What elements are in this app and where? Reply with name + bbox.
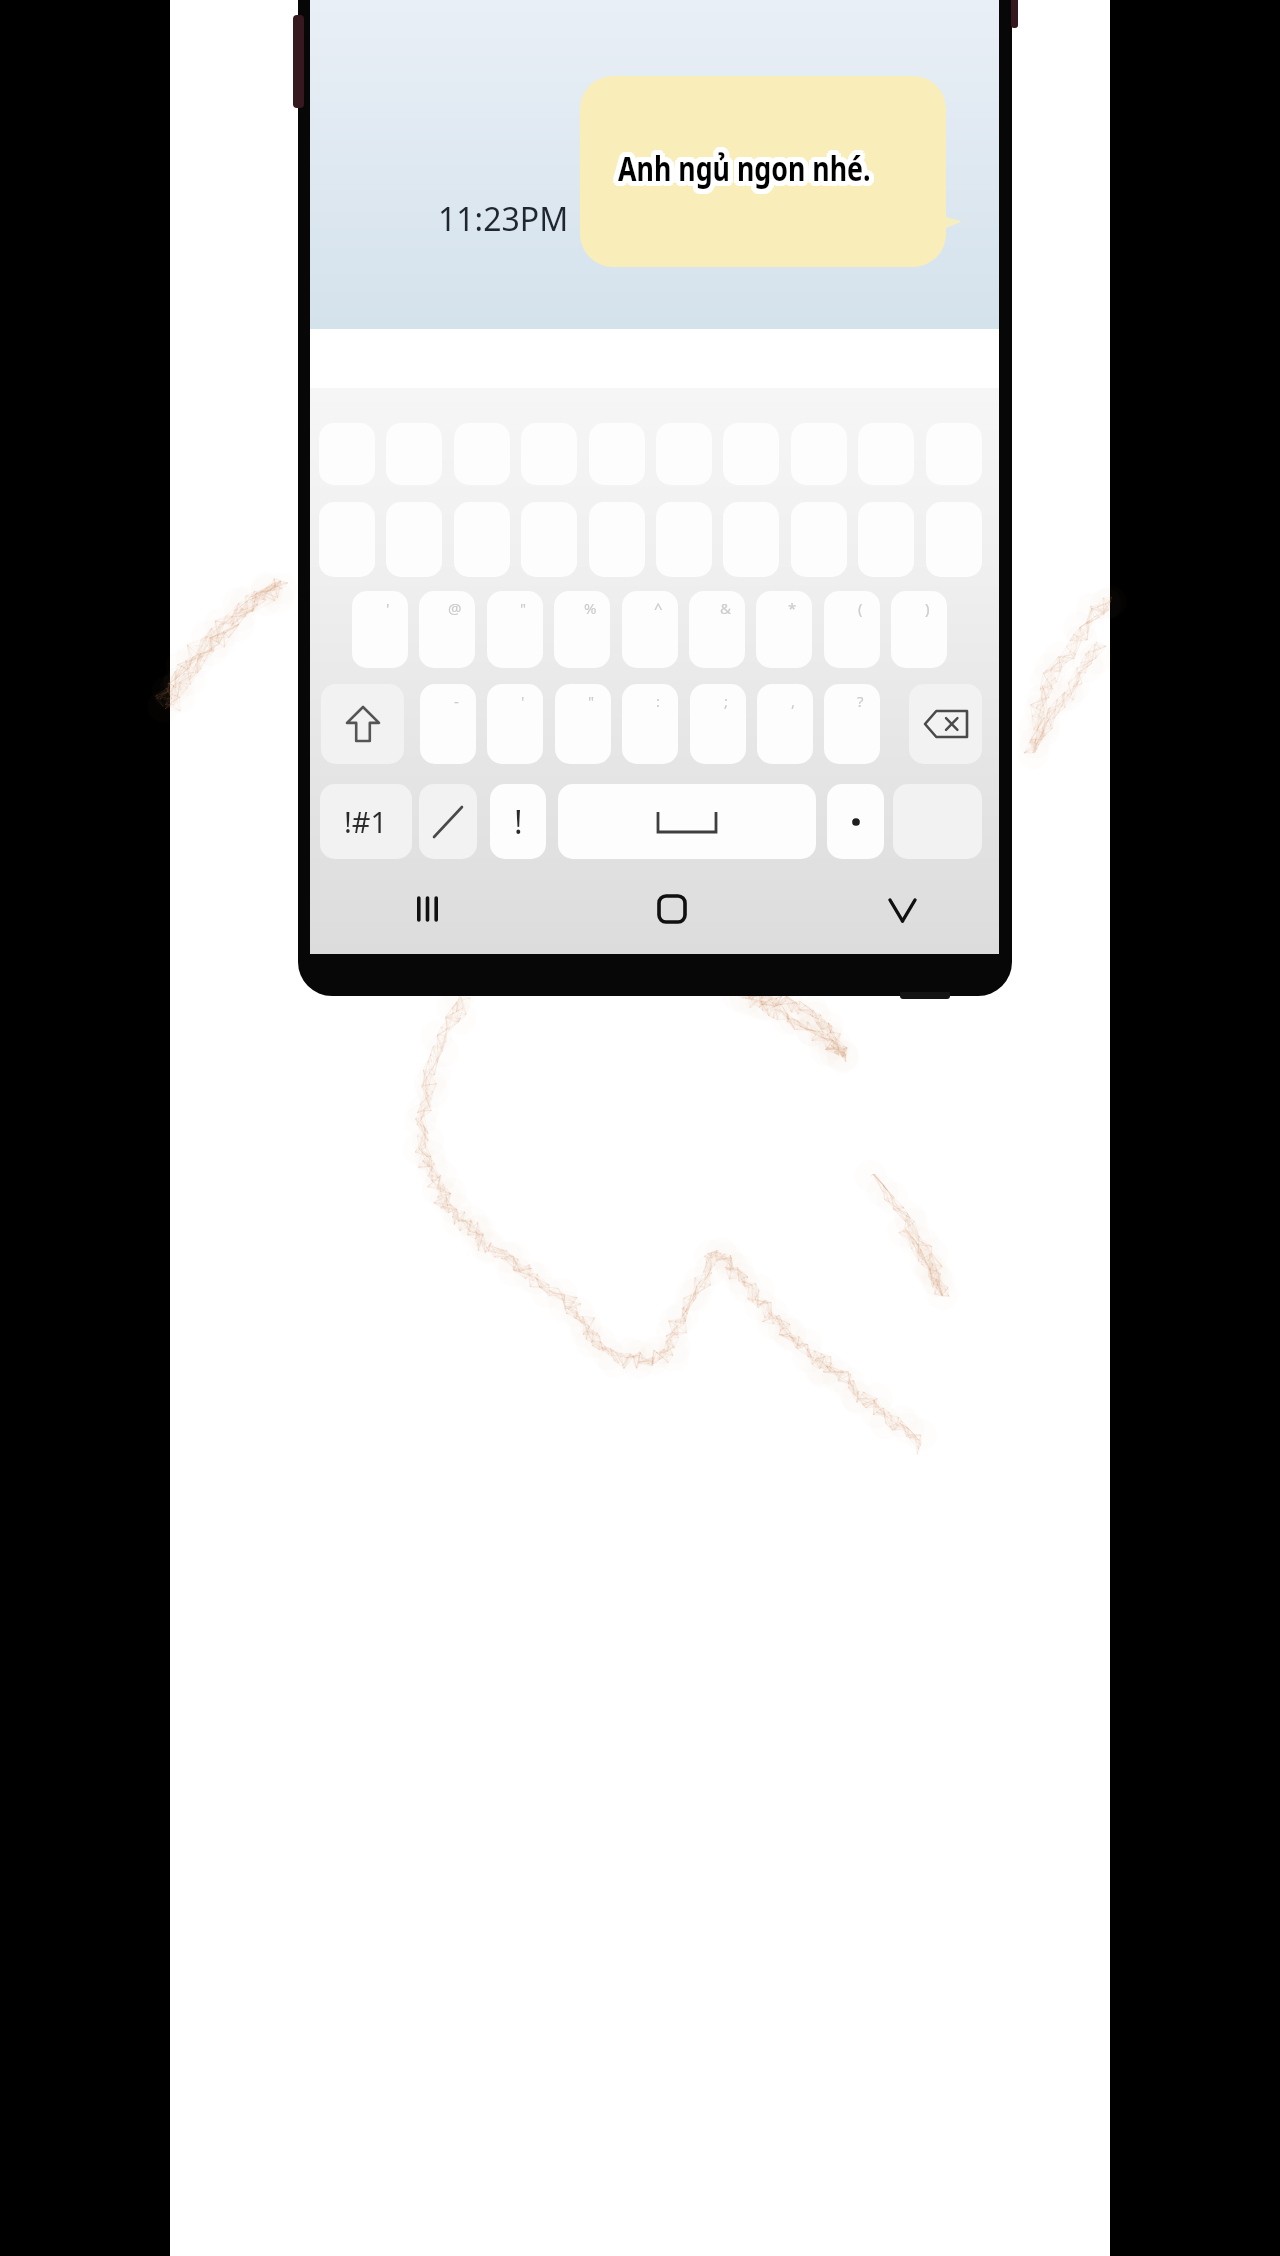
staticText: Anh ngủ ngon nhé. — [618, 140, 871, 186]
button[interactable]: !#1 — [320, 784, 412, 859]
staticText: ' — [521, 691, 525, 711]
button[interactable]: Period — [827, 784, 884, 859]
button[interactable]: Recent apps — [357, 866, 497, 951]
button[interactable]: @ — [419, 591, 475, 668]
button[interactable]: ! — [490, 784, 546, 859]
staticText: ! — [514, 800, 523, 844]
staticText: : — [656, 691, 661, 711]
staticText: " — [520, 598, 527, 618]
button[interactable]: Space — [558, 784, 816, 859]
staticText: , — [791, 691, 796, 711]
button[interactable]: - — [420, 684, 476, 764]
staticText: ; — [724, 691, 729, 711]
staticText: Anh ngủ ngon nhé. — [623, 145, 875, 191]
button[interactable]: Slash — [419, 784, 477, 859]
staticText: ' — [386, 598, 390, 618]
staticText: Anh ngủ ngon nhé. — [621, 141, 874, 187]
staticText: Anh ngủ ngon nhé. — [620, 150, 872, 196]
button[interactable]: ) — [891, 591, 947, 668]
button[interactable]: * — [756, 591, 812, 668]
staticText: Anh ngủ ngon nhé. — [615, 149, 867, 195]
staticText: Anh ngủ ngon nhé. — [618, 150, 871, 196]
staticText: !#1 — [344, 802, 388, 841]
button[interactable]: ; — [690, 684, 746, 764]
staticText: - — [454, 691, 459, 711]
button[interactable]: " — [555, 684, 611, 764]
staticText: Anh ngủ ngon nhé. — [613, 147, 866, 193]
staticText: ( — [858, 598, 863, 618]
button[interactable]: ? — [824, 684, 880, 764]
staticText: Anh ngủ ngon nhé. — [623, 143, 875, 189]
button[interactable]: ' — [352, 591, 408, 668]
button[interactable]: % — [554, 591, 610, 668]
staticText: @ — [448, 598, 462, 618]
staticText: ? — [857, 691, 864, 711]
staticText: % — [584, 598, 597, 618]
staticText: * — [788, 598, 797, 618]
staticText: Anh ngủ ngon nhé. — [623, 147, 875, 193]
staticText: " — [588, 691, 595, 711]
button[interactable]: ' — [487, 684, 543, 764]
staticText: 11:23PM — [438, 197, 569, 241]
button[interactable] — [580, 76, 946, 267]
staticText: & — [720, 598, 731, 618]
button[interactable]: : — [622, 684, 678, 764]
staticText: Anh ngủ ngon nhé. — [616, 150, 869, 196]
staticText: Anh ngủ ngon nhé. — [621, 149, 874, 195]
button[interactable]: Hide keyboard — [832, 868, 972, 953]
staticText: Anh ngủ ngon nhé. — [615, 141, 867, 187]
staticText: ) — [925, 598, 930, 618]
button[interactable]: Backspace — [909, 684, 982, 764]
staticText: Anh ngủ ngon nhé. — [613, 143, 866, 189]
button[interactable]: " — [487, 591, 543, 668]
staticText: Anh ngủ ngon nhé. — [618, 145, 871, 191]
staticText: Anh ngủ ngon nhé. — [620, 140, 872, 186]
button[interactable]: ^ — [622, 591, 678, 668]
button[interactable]: Home — [602, 866, 742, 951]
staticText: ^ — [654, 598, 663, 618]
button[interactable]: & — [689, 591, 745, 668]
staticText: Anh ngủ ngon nhé. — [616, 140, 869, 186]
staticText: Anh ngủ ngon nhé. — [613, 145, 866, 191]
button[interactable]: , — [757, 684, 813, 764]
button[interactable]: ( — [824, 591, 880, 668]
button[interactable]: Shift — [321, 684, 404, 764]
